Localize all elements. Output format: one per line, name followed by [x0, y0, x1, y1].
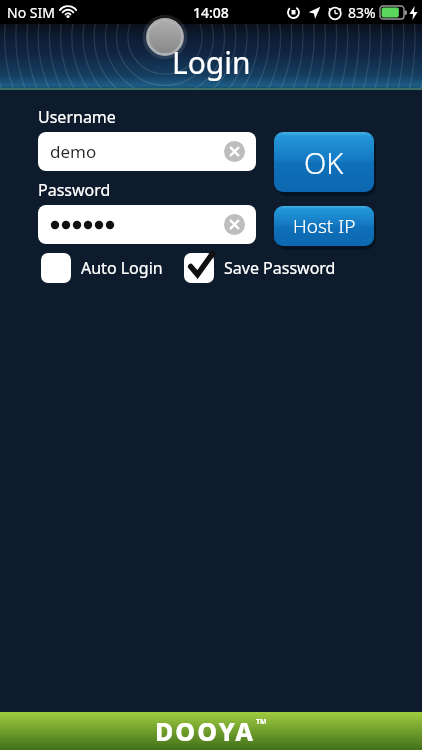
- button[interactable]: [38, 205, 256, 244]
- staticText: TM: [256, 717, 267, 727]
- staticText: No SIM: [7, 3, 55, 22]
- staticText: DOOYA: [155, 714, 256, 748]
- staticText: 14:08: [193, 3, 229, 22]
- staticText: Login: [172, 42, 251, 83]
- staticText: demo: [50, 140, 97, 163]
- staticText: OK: [304, 143, 344, 182]
- staticText: 83%: [348, 3, 376, 22]
- button[interactable]: OK: [274, 132, 374, 192]
- button[interactable]: [41, 253, 71, 283]
- button[interactable]: Host IP: [274, 206, 374, 246]
- staticText: Auto Login: [81, 257, 163, 279]
- staticText: Host IP: [293, 213, 356, 239]
- staticText: Password: [38, 179, 111, 201]
- button[interactable]: demo: [38, 132, 256, 171]
- staticText: Save Password: [224, 257, 336, 279]
- button[interactable]: [184, 253, 214, 283]
- button[interactable]: DOOYA: [0, 712, 422, 750]
- staticText: Username: [38, 106, 116, 128]
